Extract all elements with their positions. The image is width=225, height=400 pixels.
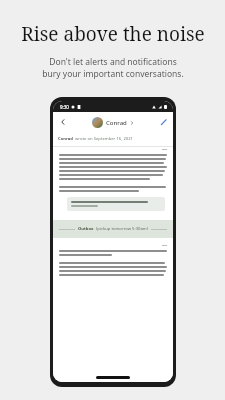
- button[interactable]: Back: [53, 112, 173, 132]
- staticText: (pickup tomorrow 5:30am): [96, 226, 148, 232]
- staticText: Don't let alerts and notifications bury …: [42, 56, 184, 80]
- staticText: 9:30: [60, 104, 69, 110]
- staticText: wrote on September 16, 2021: [75, 136, 134, 142]
- button[interactable]: Edit: [157, 116, 169, 128]
- button[interactable]: Conrad: [92, 117, 134, 128]
- staticText: Conrad: [58, 136, 73, 142]
- staticText: Rise above the noise: [21, 21, 205, 47]
- staticText: Conrad: [106, 119, 127, 127]
- button[interactable]: [67, 197, 165, 211]
- staticText: Outbox: [78, 226, 94, 232]
- button[interactable]: Back: [57, 116, 69, 128]
